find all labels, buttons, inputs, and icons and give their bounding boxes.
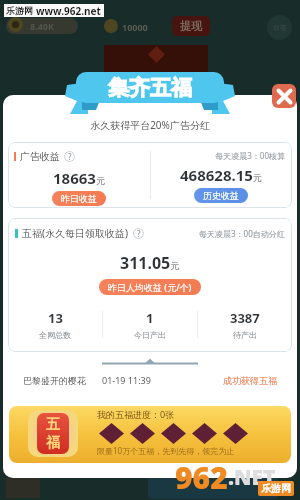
button[interactable]: 8.40K [6, 18, 78, 34]
staticText: 历史收益 [203, 190, 239, 201]
staticText: ? [68, 151, 72, 162]
staticText: 962 [175, 457, 228, 498]
staticText: 双签 [273, 23, 287, 32]
button[interactable]: Settings [267, 15, 292, 40]
staticText: 提现 [180, 19, 202, 33]
staticText: 待产出 [233, 330, 257, 340]
staticText: 乐游网 [6, 5, 33, 16]
button[interactable]: 广告收益 [8, 142, 292, 208]
staticText: 10000 [122, 21, 148, 33]
staticText: 468628.15元 [180, 165, 262, 185]
staticText: 成功获得五福 [223, 375, 277, 386]
staticText: www.962.net [36, 4, 101, 17]
button[interactable]: 五福(永久每日领取收益) [8, 218, 292, 352]
staticText: 昨日收益 [61, 193, 97, 204]
staticText: 永久获得平台20%广告分红 [3, 118, 297, 132]
staticText: 01-19 11:39 [102, 374, 151, 386]
staticText: 昨日人均收益 (元/个) [108, 281, 192, 293]
staticText: ? [137, 228, 141, 239]
button[interactable]: 五 [9, 406, 291, 463]
staticText: 乐游网 [261, 482, 291, 495]
staticText: .NET [228, 463, 276, 492]
staticText: 18663元 [53, 168, 105, 188]
staticText: 限量10万个五福，先到先得，领完为止 [97, 445, 235, 456]
button[interactable]: Close [272, 84, 296, 108]
button[interactable]: 提现 [172, 16, 210, 36]
staticText: 巴黎盛开的樱花 [23, 375, 86, 386]
staticText: 福 [46, 434, 60, 452]
staticText: 1 [146, 309, 154, 327]
staticText: 8.40K [30, 20, 54, 32]
staticText: 集齐五福 [108, 75, 192, 101]
staticText: 13 [48, 309, 63, 327]
staticText: 广告收益 [20, 150, 60, 163]
staticText: 每天凌晨3：00核算 [150, 150, 285, 161]
staticText: 311.05元 [120, 252, 180, 274]
staticText: 今日产出 [134, 330, 166, 340]
staticText: 全网总数 [39, 330, 71, 340]
staticText: 3387 [230, 309, 260, 327]
staticText: 五福(永久每日领取收益) [22, 226, 129, 240]
staticText: 每天凌晨3：00自动分红 [199, 228, 285, 239]
staticText: 我的五福进度：0张 [97, 408, 175, 420]
staticText: 五 [46, 416, 60, 434]
